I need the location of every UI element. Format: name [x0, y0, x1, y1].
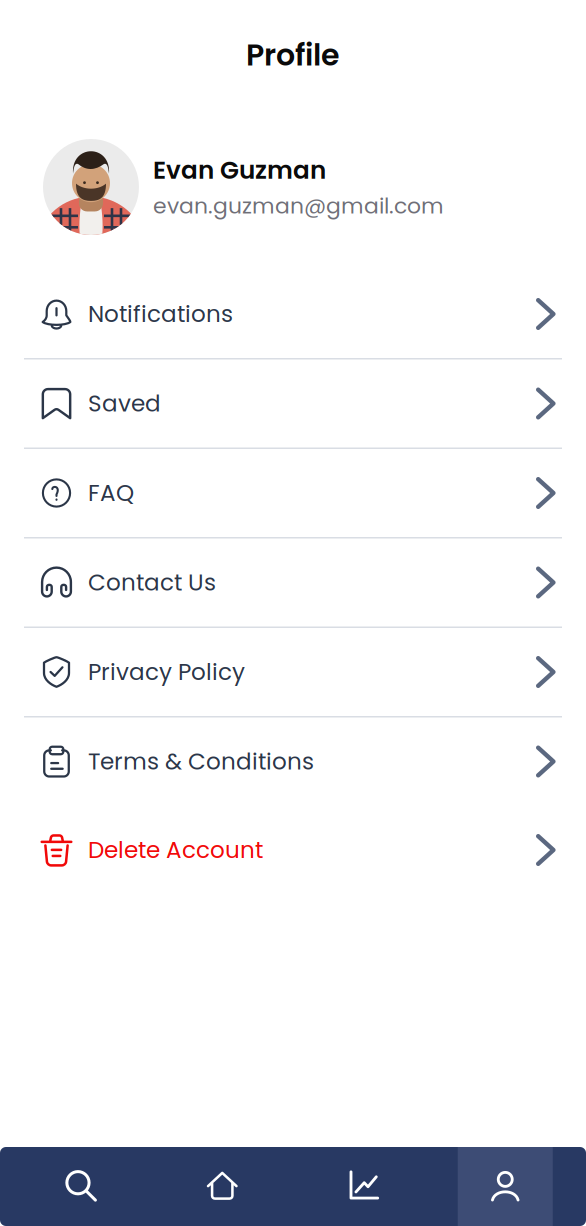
button[interactable]: Saved [0, 359, 586, 447]
staticText: Evan Guzman [153, 153, 326, 187]
staticText: Notifications [88, 298, 233, 330]
button[interactable]: Home [151, 1147, 293, 1226]
staticText: evan.guzman@gmail.com [153, 190, 444, 221]
button[interactable]: Delete Account [0, 805, 586, 894]
button[interactable]: Terms & Conditions [0, 717, 586, 805]
button[interactable]: Search [10, 1147, 151, 1226]
button[interactable]: Privacy Policy [0, 628, 586, 716]
button[interactable]: FAQ [0, 449, 586, 537]
button[interactable]: Notifications [0, 270, 586, 358]
staticText: Saved [88, 387, 161, 420]
button[interactable]: Profile [434, 1147, 576, 1226]
staticText: Delete Account [88, 834, 263, 866]
staticText: Profile [246, 34, 340, 76]
staticText: FAQ [88, 477, 134, 509]
staticText: Contact Us [88, 566, 216, 599]
staticText: Terms & Conditions [88, 745, 314, 778]
staticText: Privacy Policy [88, 656, 245, 688]
button[interactable]: Contact Us [0, 538, 586, 626]
button[interactable]: Statistics [293, 1147, 434, 1226]
